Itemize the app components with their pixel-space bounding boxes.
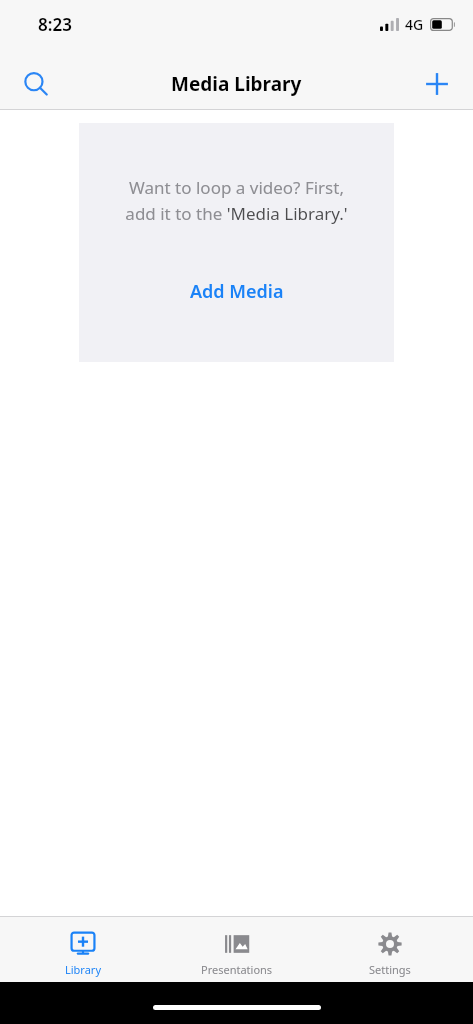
button[interactable]: Library [13, 923, 153, 977]
button[interactable]: Add [413, 60, 461, 108]
staticText: Media Library [171, 71, 302, 97]
button[interactable]: Presentations [167, 923, 307, 977]
staticText: Presentations [201, 962, 273, 977]
button[interactable]: Add Media [174, 273, 300, 310]
staticText: Library [65, 962, 102, 977]
button[interactable]: Settings [320, 923, 460, 977]
staticText: 8:23 [38, 13, 72, 36]
button[interactable]: Search [12, 60, 60, 108]
staticText: Add Media [190, 279, 284, 304]
staticText: Want to loop a video? First, add it to t… [79, 176, 394, 225]
staticText: 4G [405, 15, 424, 34]
staticText: Settings [369, 962, 411, 977]
